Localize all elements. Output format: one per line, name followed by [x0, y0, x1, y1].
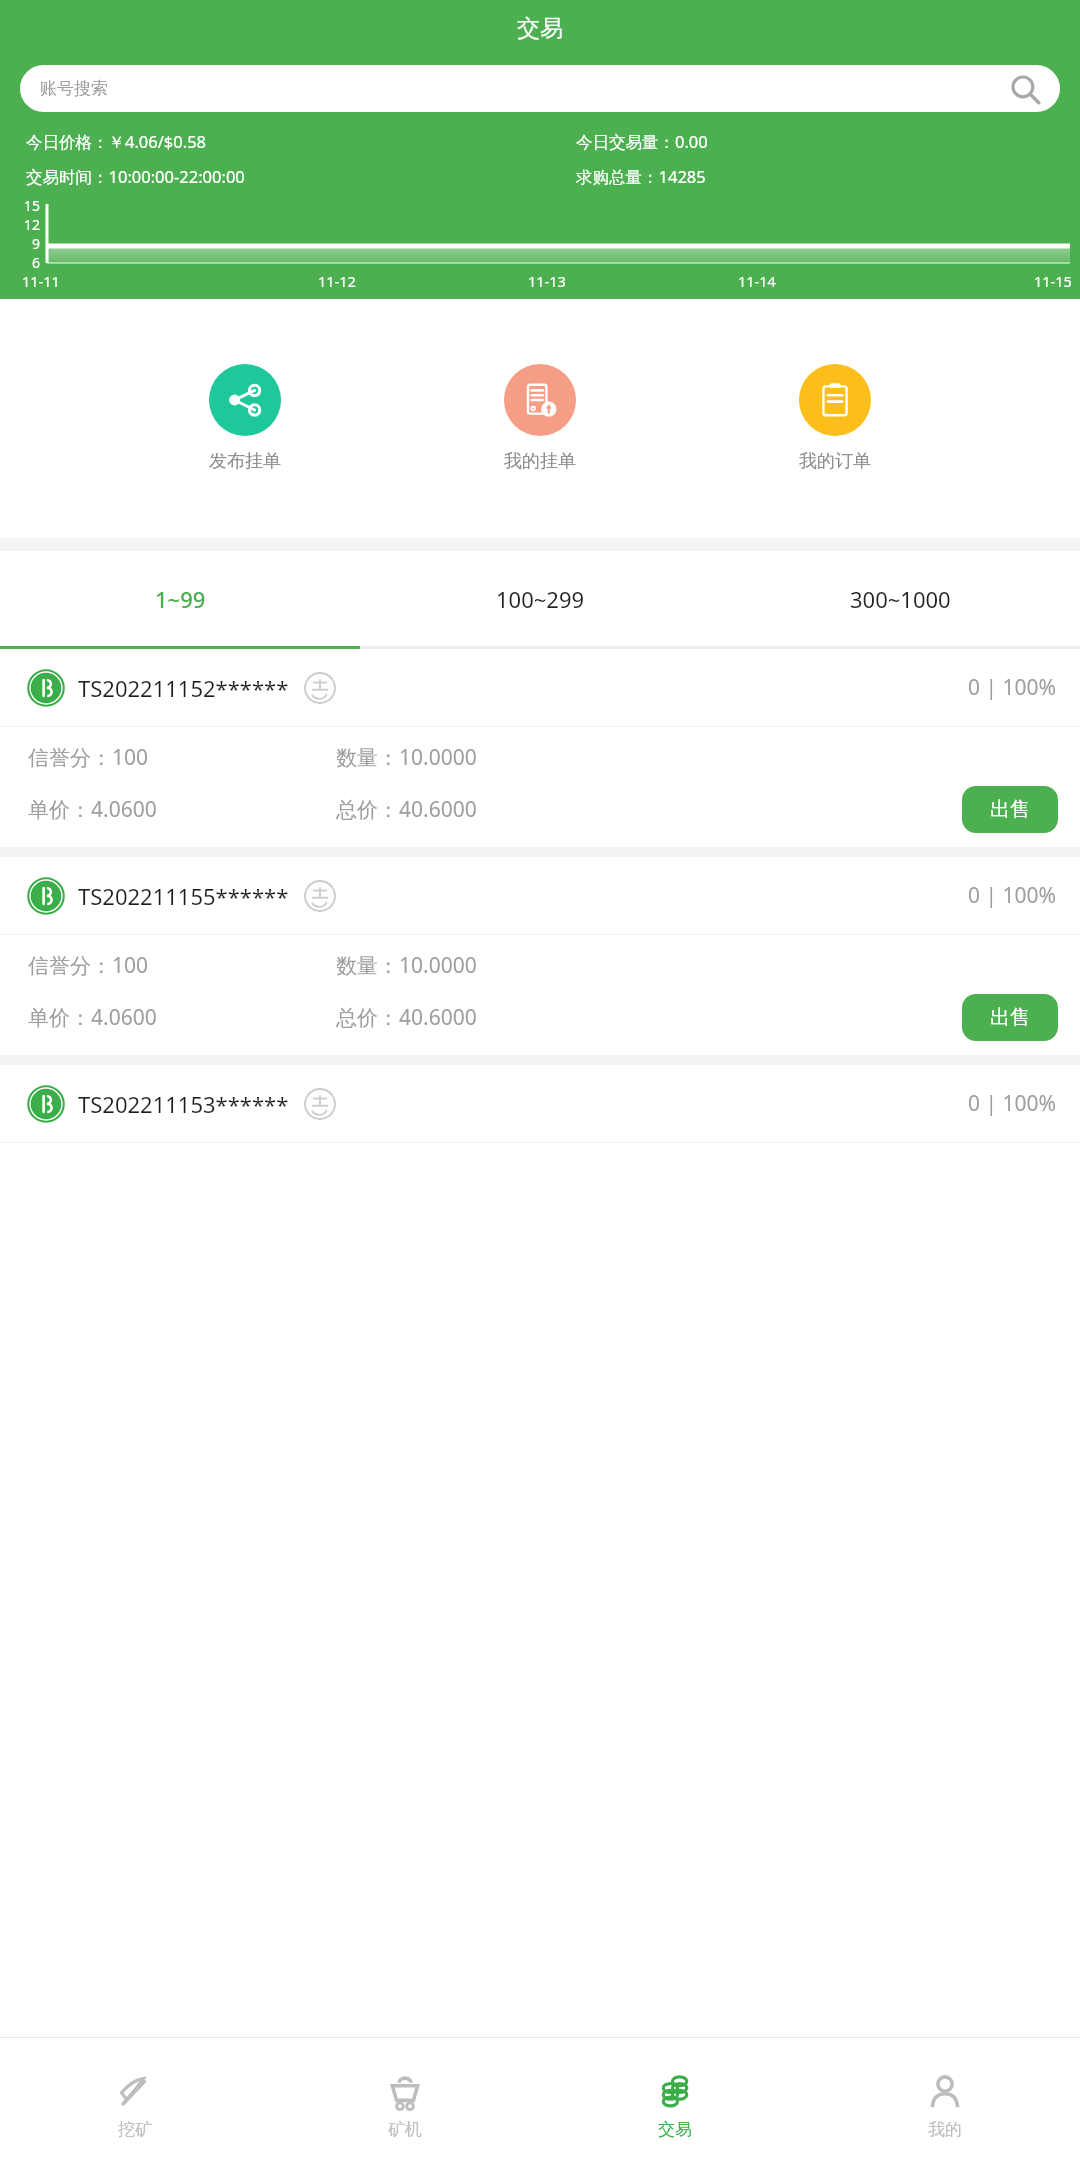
staticText: 今日价格：￥4.06/$0.58 [26, 130, 576, 153]
staticText: 我的 [928, 2119, 962, 2140]
staticText: 交易 [0, 14, 1080, 43]
button[interactable]: 矿机 [270, 2038, 540, 2172]
staticText: 0 | 100% [968, 1089, 1056, 1118]
staticText: 300~1000 [850, 584, 951, 614]
staticText: TS202211155****** [78, 881, 289, 911]
staticText: 出售 [990, 797, 1030, 822]
staticText: 信誉分：100 [28, 951, 336, 980]
staticText: 总价：40.6000 [336, 795, 751, 824]
staticText: 总价：40.6000 [336, 1003, 751, 1032]
staticText: 0 | 100% [968, 673, 1056, 702]
staticText: 11-12 [318, 271, 356, 291]
staticText: 11-13 [528, 271, 566, 291]
staticText: 交易 [658, 2119, 692, 2140]
staticText: 信誉分：100 [28, 743, 336, 772]
staticText: 账号搜索 [40, 78, 108, 99]
button[interactable]: TS202211152****** [0, 649, 1080, 847]
staticText: 单价：4.0600 [28, 795, 336, 824]
button[interactable]: 交易 [540, 2038, 810, 2172]
staticText: 12 [0, 215, 40, 234]
staticText: 15 [0, 196, 40, 215]
staticText: 发布挂单 [209, 450, 281, 473]
staticText: 11-15 [1034, 271, 1072, 291]
staticText: 0 | 100% [968, 881, 1056, 910]
staticText: 11-11 [22, 271, 60, 291]
staticText: 交易时间：10:00:00-22:00:00 [26, 165, 576, 188]
button[interactable]: 出售 [962, 994, 1058, 1041]
button[interactable]: TS202211155****** [0, 857, 1080, 1055]
staticText: 9 [0, 234, 40, 253]
staticText: TS202211153****** [78, 1089, 289, 1119]
staticText: 11-14 [738, 271, 776, 291]
staticText: 数量：10.0000 [336, 951, 751, 980]
staticText: 挖矿 [118, 2119, 152, 2140]
staticText: 100~299 [496, 584, 585, 614]
button[interactable]: TS202211153****** [0, 1065, 1080, 1143]
staticText: 数量：10.0000 [336, 743, 751, 772]
staticText: 1~99 [155, 584, 206, 614]
staticText: 出售 [990, 1005, 1030, 1030]
staticText: 单价：4.0600 [28, 1003, 336, 1032]
staticText: 矿机 [388, 2119, 422, 2140]
staticText: TS202211152****** [78, 673, 289, 703]
button[interactable]: 100~299 [360, 551, 720, 646]
staticText: 求购总量：14285 [576, 165, 1054, 188]
staticText: 我的挂单 [504, 450, 576, 473]
button[interactable]: 出售 [962, 786, 1058, 833]
button[interactable]: 300~1000 [720, 551, 1080, 646]
button[interactable]: 我的 [810, 2038, 1080, 2172]
button[interactable]: 挖矿 [0, 2038, 270, 2172]
button[interactable]: 账号搜索 [20, 65, 1060, 112]
staticText: 6 [0, 253, 40, 271]
staticText: 我的订单 [799, 450, 871, 473]
button[interactable]: 1~99 [0, 551, 360, 646]
button[interactable]: 我的订单 [785, 358, 885, 479]
button[interactable]: 发布挂单 [195, 358, 295, 479]
staticText: 今日交易量：0.00 [576, 130, 1054, 153]
button[interactable]: 我的挂单 [490, 358, 590, 479]
